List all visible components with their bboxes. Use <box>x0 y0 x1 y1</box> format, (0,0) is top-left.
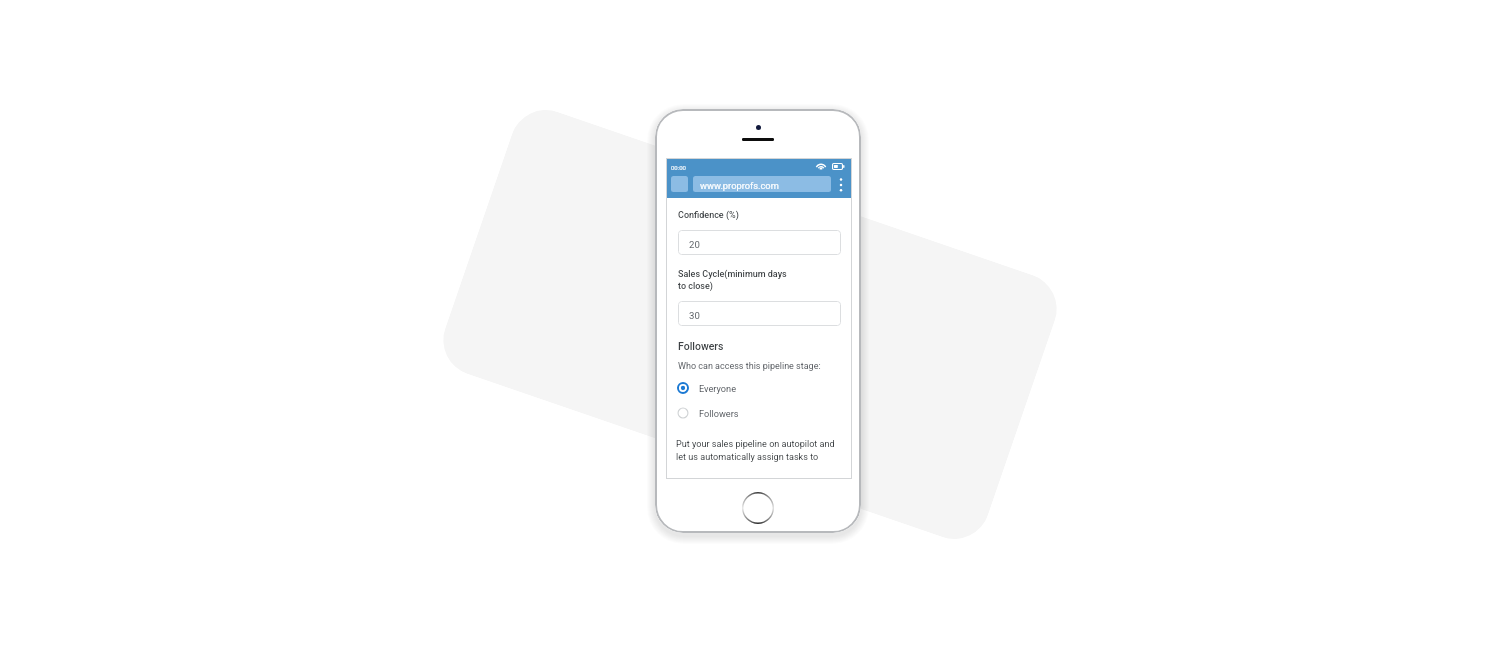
staticText: Who can access this pipeline stage: <box>678 361 821 372</box>
button[interactable]: More options <box>835 174 847 195</box>
button[interactable]: Followers <box>677 407 757 419</box>
staticText: Everyone <box>699 383 737 394</box>
button[interactable]: Tabs <box>671 176 688 192</box>
staticText: Followers <box>699 408 739 419</box>
staticText: 00:00 <box>671 164 686 171</box>
button[interactable]: Everyone <box>677 382 757 394</box>
staticText: Sales Cycle(minimum days to close) <box>678 269 787 291</box>
other: Home <box>742 492 774 524</box>
staticText: Followers <box>678 340 724 352</box>
staticText: Confidence (%) <box>678 210 739 221</box>
staticText: www.proprofs.com <box>700 180 779 191</box>
button[interactable]: 20 <box>678 230 841 255</box>
other: Wi-Fi <box>815 162 827 170</box>
staticText: 20 <box>689 239 700 250</box>
button[interactable]: 30 <box>678 301 841 326</box>
other: Battery <box>832 163 845 170</box>
staticText: 30 <box>689 310 700 321</box>
staticText: Put your sales pipeline on autopilot and… <box>676 439 835 462</box>
button[interactable]: www.proprofs.com <box>693 176 831 192</box>
